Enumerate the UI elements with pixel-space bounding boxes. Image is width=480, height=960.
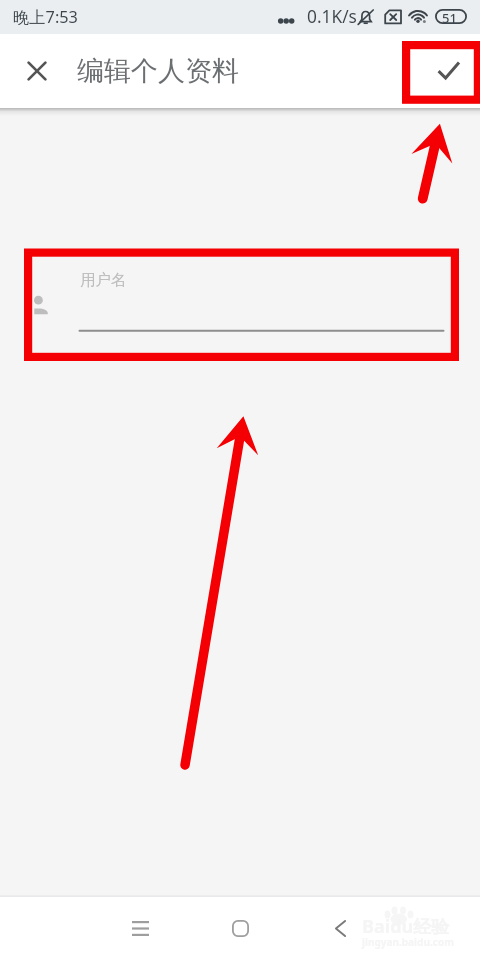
button[interactable]: Close (13, 47, 61, 95)
staticText: 用户名 (80, 270, 127, 290)
staticText: 51 (442, 9, 457, 24)
button[interactable]: Menu (116, 904, 164, 952)
button[interactable]: Confirm (420, 42, 476, 98)
button[interactable]: Home (216, 904, 264, 952)
staticText: 0.1K/s (307, 5, 357, 29)
staticText: 编辑个人资料 (77, 54, 239, 88)
staticText: 晚上7:53 (13, 6, 78, 28)
staticText: jingyan.baidu.com (362, 935, 454, 949)
staticText: Baidu经验 (362, 914, 450, 939)
button[interactable]: Back (316, 904, 364, 952)
